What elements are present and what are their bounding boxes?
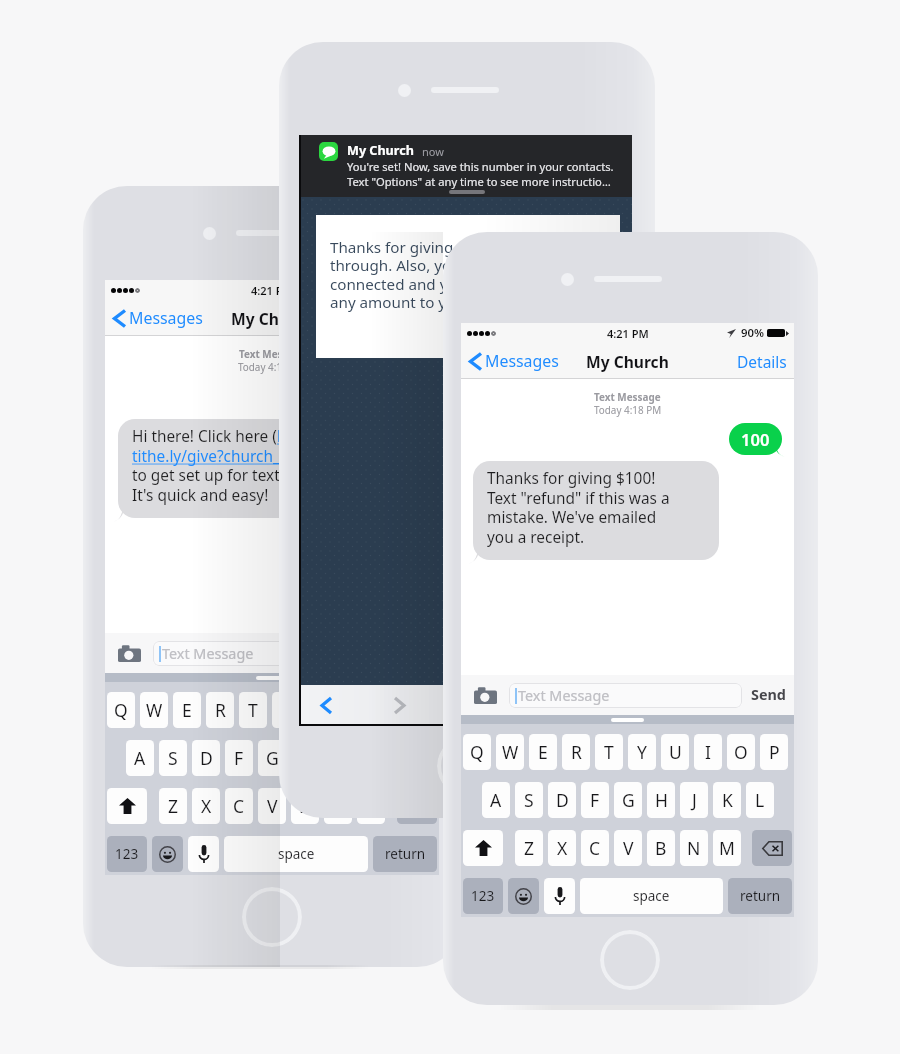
button[interactable]: W (496, 734, 524, 770)
button[interactable]: R (562, 734, 590, 770)
button[interactable]: Text Message (153, 641, 387, 666)
button[interactable]: Emoji (152, 836, 183, 872)
staticText: A (490, 788, 502, 812)
staticText: Today 4:18 PM (238, 360, 306, 373)
button[interactable]: Text Message (509, 683, 742, 708)
button[interactable]: Details (730, 345, 794, 378)
button[interactable]: D (192, 740, 220, 776)
staticText: Messages (129, 307, 203, 329)
staticText: Thanks for giving $1 (330, 237, 475, 258)
button[interactable]: W (140, 692, 168, 728)
staticText: 123 (471, 887, 495, 905)
button[interactable]: S (515, 782, 543, 818)
button[interactable]: B (647, 830, 675, 866)
button[interactable]: I (694, 734, 722, 770)
button[interactable]: N (680, 830, 708, 866)
staticText: Text Message (518, 686, 610, 706)
button[interactable]: Send (749, 681, 788, 709)
button[interactable]: Y (628, 734, 656, 770)
button[interactable]: I (338, 692, 366, 728)
button[interactable]: N (324, 788, 352, 824)
staticText: K (722, 788, 733, 812)
button[interactable]: C (225, 788, 253, 824)
button[interactable]: G (614, 782, 642, 818)
button[interactable]: Backspace (397, 788, 437, 824)
button[interactable]: Q (463, 734, 491, 770)
button[interactable]: V (614, 830, 642, 866)
button[interactable]: M (357, 788, 385, 824)
button[interactable]: space (580, 878, 723, 914)
button[interactable]: O (727, 734, 755, 770)
button[interactable]: P (404, 692, 432, 728)
button[interactable]: Shift (107, 788, 147, 824)
button[interactable]: T (595, 734, 623, 770)
button[interactable]: P (760, 734, 788, 770)
staticText: C (233, 794, 245, 818)
button[interactable]: Messages (105, 303, 207, 333)
button[interactable]: Z (159, 788, 187, 824)
button[interactable]: 100 (729, 423, 782, 455)
button[interactable]: Z (515, 830, 543, 866)
button[interactable]: X (548, 830, 576, 866)
button[interactable]: Q (107, 692, 135, 728)
button[interactable]: G (258, 740, 286, 776)
button[interactable]: Forward (387, 692, 413, 718)
button[interactable]: Shift (463, 830, 503, 866)
button[interactable]: Emoji (508, 878, 539, 914)
button[interactable]: E (529, 734, 557, 770)
button[interactable]: K (713, 782, 741, 818)
button[interactable]: Thanks for giving $100! (473, 461, 719, 560)
button[interactable]: B (291, 788, 319, 824)
staticText: h (277, 426, 287, 447)
button[interactable]: Backspace (752, 830, 792, 866)
button[interactable]: S (159, 740, 187, 776)
button[interactable]: Details (375, 302, 439, 335)
button[interactable]: L (746, 782, 774, 818)
staticText: I (705, 740, 711, 764)
button[interactable]: A (126, 740, 154, 776)
staticText: X (201, 794, 212, 818)
button[interactable]: V (258, 788, 286, 824)
button[interactable]: M (713, 830, 741, 866)
button[interactable]: J (680, 782, 708, 818)
staticText: W (502, 740, 519, 764)
button[interactable]: T (239, 692, 267, 728)
button[interactable]: X (192, 788, 220, 824)
staticText: tithe.ly/give?church_id (132, 446, 294, 467)
button[interactable]: Y (272, 692, 300, 728)
button[interactable]: return (728, 878, 792, 914)
button[interactable]: R (206, 692, 234, 728)
button[interactable]: 123 (107, 836, 147, 872)
button[interactable]: Hi there! Click here ( (118, 419, 373, 518)
button[interactable]: Dictation (544, 878, 575, 914)
staticText: P (769, 740, 780, 764)
button[interactable]: 123 (463, 878, 503, 914)
button[interactable]: return (373, 836, 437, 872)
button[interactable]: Camera (474, 687, 497, 704)
button[interactable]: A (482, 782, 510, 818)
button[interactable]: space (224, 836, 368, 872)
staticText: F (590, 788, 600, 812)
button[interactable]: Dictation (188, 836, 219, 872)
button[interactable]: E (173, 692, 201, 728)
button[interactable]: H (647, 782, 675, 818)
button[interactable]: Camera (118, 645, 141, 662)
button[interactable]: U (305, 692, 333, 728)
button[interactable]: O (371, 692, 399, 728)
staticText: Text "refund" if this was a (487, 488, 670, 509)
staticText: Text Message (162, 644, 254, 664)
button[interactable]: Messages (461, 346, 563, 376)
button[interactable]: Back (313, 692, 339, 718)
staticText: D (556, 788, 569, 812)
button[interactable]: D (548, 782, 576, 818)
button[interactable]: F (225, 740, 253, 776)
button[interactable]: F (581, 782, 609, 818)
button[interactable]: U (661, 734, 689, 770)
button[interactable]: C (581, 830, 609, 866)
